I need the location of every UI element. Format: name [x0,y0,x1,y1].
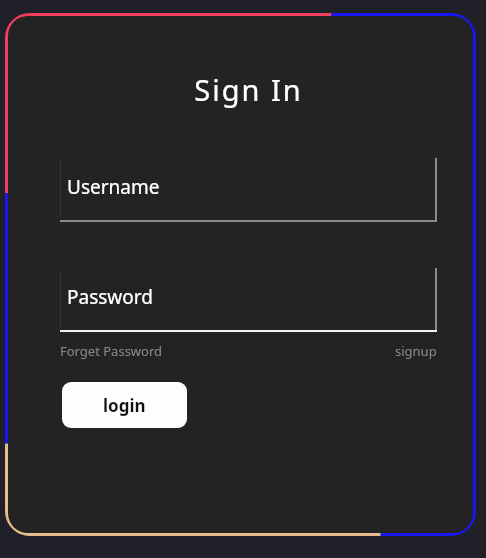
staticText: Password [67,284,153,310]
staticText: Sign In [60,70,437,109]
button[interactable]: Username [60,156,437,222]
button[interactable]: Forget Password [60,340,163,362]
button[interactable]: login [62,382,187,428]
button[interactable]: Password [60,266,437,332]
staticText: login [103,394,146,417]
button[interactable]: signup [395,340,437,362]
staticText: Username [67,174,160,200]
